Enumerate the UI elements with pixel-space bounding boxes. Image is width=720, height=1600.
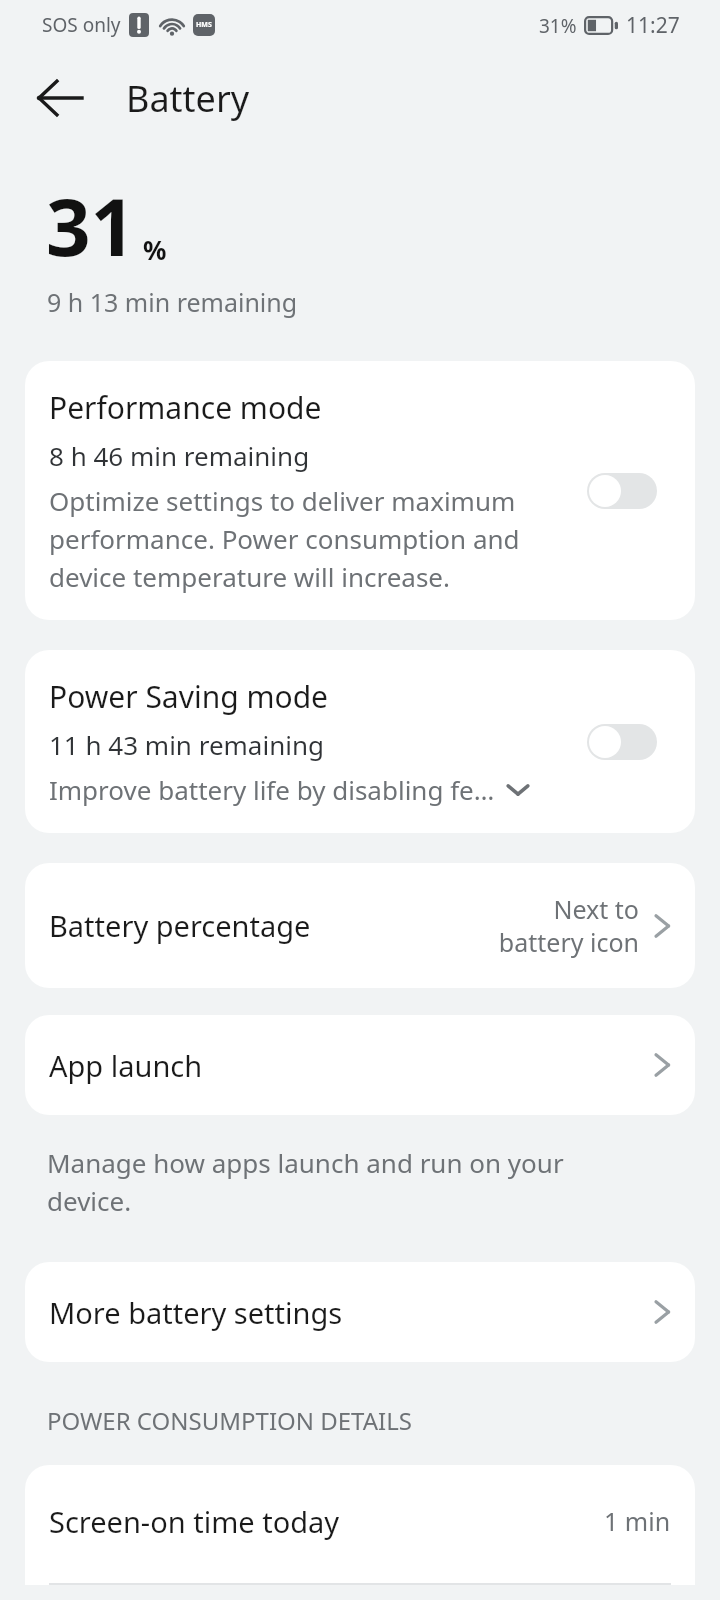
staticText: SOS only (42, 12, 121, 38)
staticText: 11 h 43 min remaining (49, 727, 325, 762)
staticText: Next to battery icon (498, 892, 639, 959)
staticText: 8 h 46 min remaining (49, 438, 310, 473)
button[interactable]: Performance mode (25, 361, 695, 620)
button[interactable]: Toggle (587, 473, 657, 509)
button[interactable]: Screen-on time today (25, 1465, 695, 1585)
staticText: HMS (196, 20, 212, 30)
button[interactable]: More battery settings (25, 1262, 695, 1362)
staticText: Screen-on time today (49, 1502, 340, 1541)
staticText: More battery settings (49, 1293, 343, 1332)
staticText: 11:27 (626, 11, 680, 40)
staticText: Improve battery life by disabling fe… (49, 772, 495, 807)
button[interactable]: Power Saving mode (25, 650, 695, 833)
button[interactable]: Toggle (587, 724, 657, 760)
staticText: Manage how apps launch and run on your d… (47, 1145, 564, 1218)
staticText: App launch (49, 1046, 203, 1085)
staticText: 9 h 13 min remaining (47, 285, 298, 319)
button[interactable]: App launch (25, 1015, 695, 1115)
staticText: % (143, 232, 167, 267)
button[interactable]: Back (26, 64, 94, 132)
button[interactable]: Battery percentage (25, 863, 695, 988)
staticText: 31% (539, 13, 577, 39)
staticText: Performance mode (49, 387, 322, 428)
staticText: Battery (126, 74, 250, 123)
staticText: Power Saving mode (49, 676, 329, 717)
staticText: 31 (46, 173, 136, 279)
staticText: POWER CONSUMPTION DETAILS (47, 1404, 412, 1437)
staticText: Optimize settings to deliver maximum per… (49, 483, 520, 594)
staticText: 1 min (604, 1504, 671, 1538)
staticText: Battery percentage (49, 906, 311, 945)
